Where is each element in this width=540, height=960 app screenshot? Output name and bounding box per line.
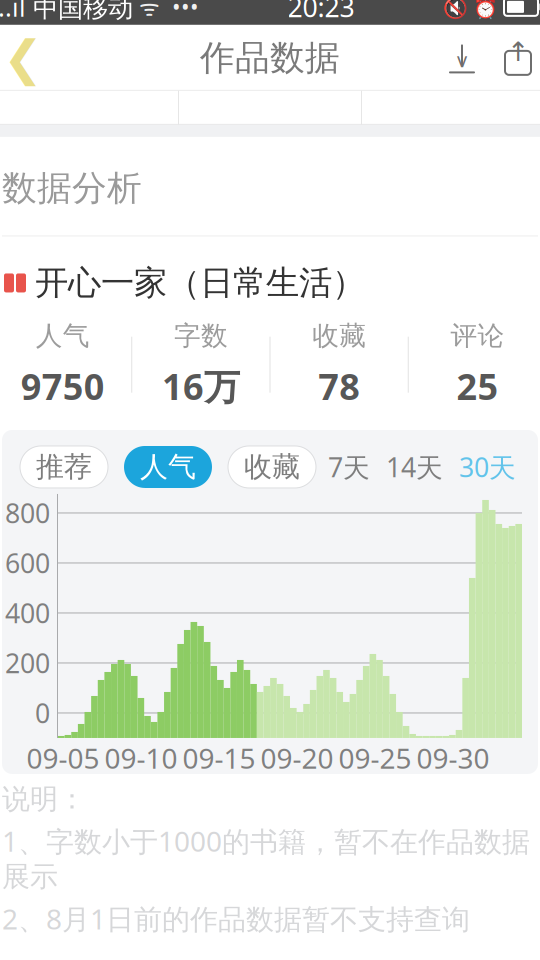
staticText: ᯤ ••• bbox=[133, 0, 199, 22]
staticText: 78 bbox=[318, 362, 360, 410]
button[interactable]: Download bbox=[434, 25, 490, 91]
staticText: 7天 bbox=[328, 449, 370, 485]
button[interactable]: 推荐 bbox=[20, 446, 108, 488]
staticText: 09-15 bbox=[182, 739, 255, 777]
staticText: ❮ bbox=[3, 31, 43, 85]
staticText: ↑ bbox=[507, 37, 529, 67]
staticText: 人气 bbox=[36, 319, 90, 352]
staticText: 14天 bbox=[386, 449, 443, 485]
staticText: 800 bbox=[5, 495, 50, 531]
staticText: 推荐 bbox=[36, 450, 92, 484]
staticText: v bbox=[457, 46, 467, 73]
staticText: 开心一家（日常生活） bbox=[35, 262, 365, 303]
staticText: 数据分析 bbox=[2, 167, 142, 209]
staticText: 0 bbox=[35, 695, 50, 731]
staticText: 25 bbox=[456, 362, 498, 410]
staticText: 30天 bbox=[459, 449, 516, 485]
staticText: 09-25 bbox=[338, 739, 411, 777]
staticText: 20:23 bbox=[287, 0, 354, 25]
button[interactable]: Share bbox=[490, 25, 540, 91]
staticText: 09-05 bbox=[26, 739, 99, 777]
staticText: 🔇 ⏰ bbox=[443, 0, 498, 20]
staticText: 字数 bbox=[174, 319, 228, 352]
staticText: 2、8月1日前的作品数据暂不支持查询 bbox=[2, 900, 470, 937]
staticText: 200 bbox=[5, 645, 50, 681]
staticText: 1、字数小于1000的书籍，暂不在作品数据展示 bbox=[2, 822, 530, 894]
staticText: 收藏 bbox=[312, 319, 366, 352]
button[interactable]: 7天 bbox=[324, 447, 374, 487]
button[interactable]: 收藏 bbox=[228, 446, 316, 488]
button[interactable]: 14天 bbox=[382, 447, 447, 487]
staticText: 说明： bbox=[2, 782, 86, 816]
button[interactable]: 人气 bbox=[124, 446, 212, 488]
staticText: 600 bbox=[5, 545, 50, 581]
staticText: 09-30 bbox=[416, 739, 489, 777]
staticText: 16万 bbox=[162, 362, 240, 410]
button[interactable]: Back bbox=[0, 25, 52, 91]
staticText: 作品数据 bbox=[200, 37, 340, 79]
staticText: 人气 bbox=[140, 450, 196, 484]
staticText: 评论 bbox=[450, 319, 504, 352]
staticText: ..ıl 中国移动 bbox=[0, 0, 133, 24]
staticText: 09-10 bbox=[104, 739, 177, 777]
staticText: 09-20 bbox=[260, 739, 333, 777]
button[interactable]: 30天 bbox=[455, 447, 520, 487]
staticText: 收藏 bbox=[244, 450, 300, 484]
staticText: 400 bbox=[5, 595, 50, 631]
staticText: 9750 bbox=[21, 362, 105, 410]
